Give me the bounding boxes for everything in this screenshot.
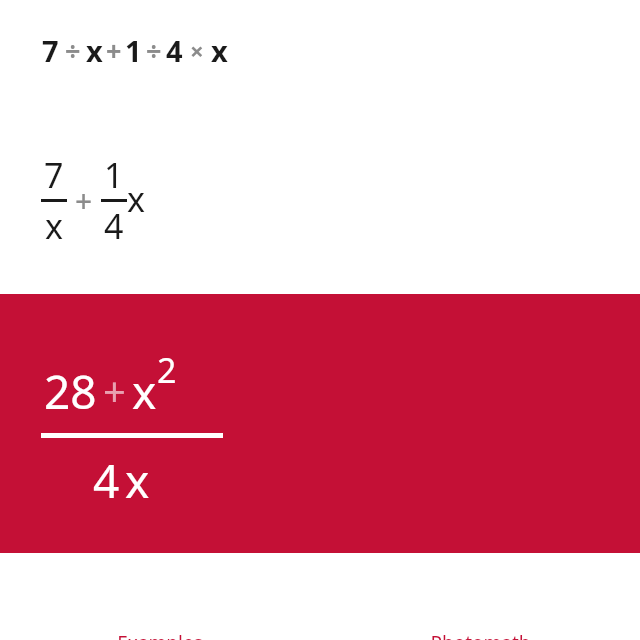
staticText: ÷	[146, 32, 162, 69]
staticText: ×	[190, 34, 204, 67]
staticText: 7	[44, 152, 64, 198]
staticText: x	[125, 449, 150, 512]
staticText: Examples	[117, 630, 203, 640]
staticText: +	[106, 32, 122, 69]
staticText: x	[86, 31, 103, 70]
button[interactable]: Photomath	[320, 612, 640, 640]
button[interactable]: 7	[41, 152, 145, 249]
staticText: 4	[166, 31, 183, 70]
button[interactable]: Examples	[0, 612, 320, 640]
staticText: 4	[93, 449, 120, 512]
staticText: 7	[42, 31, 59, 70]
staticText: 1	[104, 152, 124, 198]
staticText: Photomath	[430, 630, 531, 640]
staticText: 28	[44, 360, 97, 423]
staticText: ÷	[65, 32, 81, 69]
staticText: +	[75, 180, 93, 221]
staticText: x	[45, 203, 63, 249]
staticText: x	[211, 31, 228, 70]
staticText: 2	[157, 347, 177, 393]
staticText: +	[103, 363, 126, 417]
button[interactable]: 28	[0, 294, 640, 553]
staticText: 1	[125, 31, 142, 70]
staticText: 4	[104, 203, 124, 249]
button[interactable]: 7	[42, 31, 228, 70]
staticText: x	[132, 360, 157, 423]
staticText: x	[127, 176, 145, 222]
